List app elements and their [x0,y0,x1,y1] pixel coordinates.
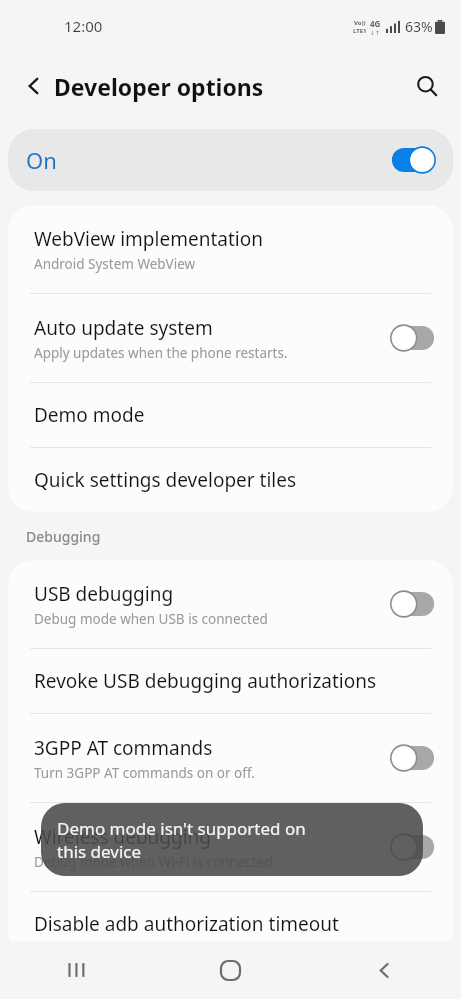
button[interactable]: On [8,129,453,191]
staticText: Developer options [54,71,264,102]
button[interactable]: Disable adb authorization timeout [8,892,453,956]
staticText: Revoke USB debugging authorizations [34,668,377,694]
button[interactable]: Toggle off [389,745,437,771]
staticText: Turn 3GPP AT commands on or off. [34,764,255,782]
button[interactable]: Auto update system [8,294,453,382]
staticText: LTE1 [353,27,367,35]
staticText: Demo mode isn't supported on [57,817,306,840]
staticText: Debugging [26,527,101,546]
staticText: Vo)) [354,19,366,27]
staticText: 4G [370,18,381,29]
button[interactable]: Demo mode [8,383,453,447]
staticText: Apply updates when the phone restarts. [34,344,288,362]
button[interactable]: Home [153,941,307,999]
button[interactable]: Search [405,64,449,108]
staticText: WebView implementation [34,226,263,252]
button[interactable]: Revoke USB debugging authorizations [8,649,453,713]
staticText: Wireless debugging [34,824,212,850]
button[interactable]: Toggle off [389,591,437,617]
staticText: Disable adb authorization timeout [34,911,339,937]
button[interactable]: Recents [0,941,153,999]
button[interactable]: Wireless debugging [8,803,453,891]
staticText: 63% [405,17,433,36]
button[interactable]: Toggle on [389,147,437,173]
staticText: 3GPP AT commands [34,735,213,761]
button[interactable]: Quick settings developer tiles [8,448,453,512]
button[interactable]: 3GPP AT commands [8,714,453,802]
staticText: On [26,145,57,175]
staticText: Quick settings developer tiles [34,467,297,493]
staticText: Demo mode [34,402,145,428]
staticText: Debug mode when USB is connected [34,610,268,628]
staticText: Debug mode when Wi-Fi is connected [34,853,273,871]
staticText: USB debugging [34,581,174,607]
button[interactable]: Toggle off [389,834,437,860]
staticText: Android System WebView [34,255,196,273]
staticText: this device [57,840,142,863]
button[interactable]: Toggle off [389,325,437,351]
staticText: 12:00 [64,16,103,36]
staticText: ↓↑ [370,29,381,36]
button[interactable]: Back [307,941,461,999]
button[interactable]: USB debugging [8,560,453,648]
staticText: Auto update system [34,315,213,341]
button[interactable]: WebView implementation [8,205,453,293]
button[interactable]: Back [14,66,54,106]
